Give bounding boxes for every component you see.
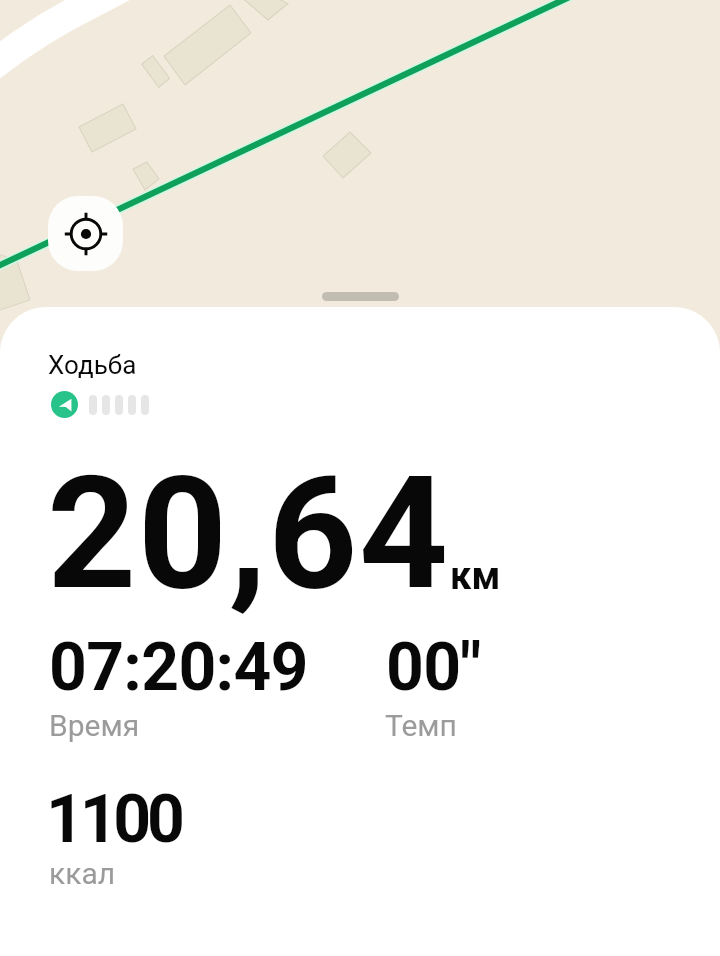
staticText: 1100 <box>46 781 181 858</box>
staticText: ккал <box>49 856 116 891</box>
staticText: Ходьба <box>48 350 137 380</box>
staticText: 20,64 <box>47 442 450 625</box>
staticText: 00" <box>386 629 481 706</box>
button[interactable]: My location <box>48 196 123 271</box>
staticText: км <box>450 554 501 599</box>
staticText: Темп <box>385 708 457 743</box>
staticText: Время <box>49 708 140 743</box>
button[interactable]: Pause workout <box>51 391 78 418</box>
staticText: 07:20:49 <box>49 629 308 706</box>
